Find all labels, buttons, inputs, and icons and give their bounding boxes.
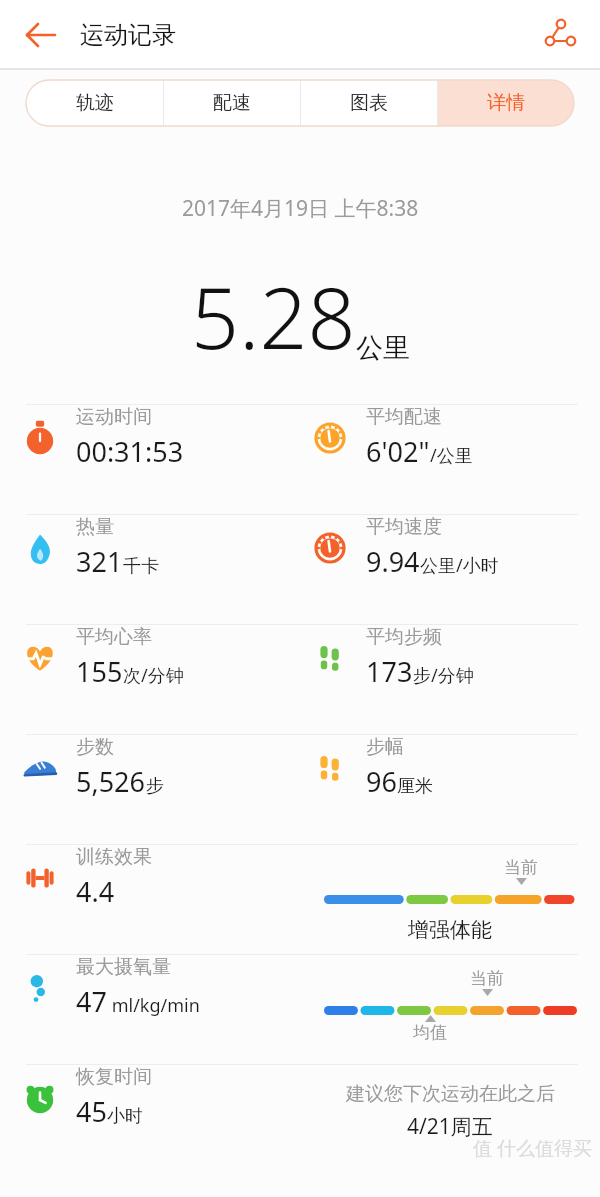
staticText: 47	[76, 983, 107, 1020]
staticText: 5.28	[191, 259, 356, 373]
button[interactable]: 训练效果	[0, 845, 600, 954]
staticText: 45	[76, 1093, 107, 1130]
button[interactable]: 配速	[163, 80, 300, 126]
staticText: 恢复时间	[76, 1065, 152, 1089]
staticText: 当前	[504, 857, 538, 878]
staticText: 轨迹	[76, 91, 114, 115]
staticText: 最大摄氧量	[76, 955, 171, 979]
staticText: 小时	[107, 1105, 143, 1128]
staticText: 增强体能	[408, 917, 492, 943]
staticText: 步	[146, 775, 164, 798]
staticText: 千卡	[123, 555, 159, 578]
button[interactable]: 热量	[0, 515, 600, 624]
staticText: 均值	[413, 1022, 447, 1043]
staticText: 4/21周五	[407, 1112, 493, 1141]
staticText: 图表	[350, 91, 388, 115]
staticText: 配速	[213, 91, 251, 115]
staticText: 155	[76, 653, 123, 690]
staticText: 次/分钟	[123, 663, 184, 688]
staticText: 详情	[487, 91, 525, 115]
button[interactable]: 运动时间	[0, 405, 600, 514]
staticText: 值 什么值得买	[473, 1135, 592, 1161]
button[interactable]: 恢复时间	[0, 1065, 600, 1165]
staticText: 平均速度	[366, 515, 442, 539]
staticText: 公里/小时	[420, 553, 499, 578]
button[interactable]: 最大摄氧量	[0, 955, 600, 1064]
button[interactable]: 轨迹	[26, 80, 163, 126]
staticText: /公里	[430, 443, 473, 468]
staticText: 步/分钟	[413, 663, 474, 688]
staticText: 5,526	[76, 763, 146, 800]
staticText: 训练效果	[76, 845, 152, 869]
staticText: 当前	[470, 968, 504, 989]
staticText: 96	[366, 763, 397, 800]
staticText: 173	[366, 653, 413, 690]
staticText: 6'02"	[366, 433, 430, 470]
staticText: 步幅	[366, 735, 404, 759]
staticText: ml/kg/min	[107, 993, 200, 1018]
staticText: 00:31:53	[76, 433, 184, 470]
button[interactable]: 图表	[300, 80, 437, 126]
staticText: 9.94	[366, 543, 420, 580]
staticText: 建议您下次运动在此之后	[346, 1082, 555, 1106]
staticText: 4.4	[76, 873, 115, 910]
staticText: 步数	[76, 735, 114, 759]
staticText: 2017年4月19日 上午8:38	[182, 194, 419, 223]
button[interactable]: 详情	[437, 80, 574, 126]
staticText: 热量	[76, 515, 114, 539]
staticText: 厘米	[397, 775, 433, 798]
staticText: 运动时间	[76, 405, 152, 429]
staticText: 运动记录	[80, 20, 176, 50]
staticText: 平均步频	[366, 625, 442, 649]
button[interactable]: Share	[538, 13, 582, 57]
button[interactable]: 步数	[0, 735, 600, 844]
staticText: 321	[76, 543, 123, 580]
staticText: 平均配速	[366, 405, 442, 429]
button[interactable]: 平均心率	[0, 625, 600, 734]
staticText: 公里	[356, 331, 410, 365]
staticText: 平均心率	[76, 625, 152, 649]
button[interactable]: Back	[18, 13, 62, 57]
